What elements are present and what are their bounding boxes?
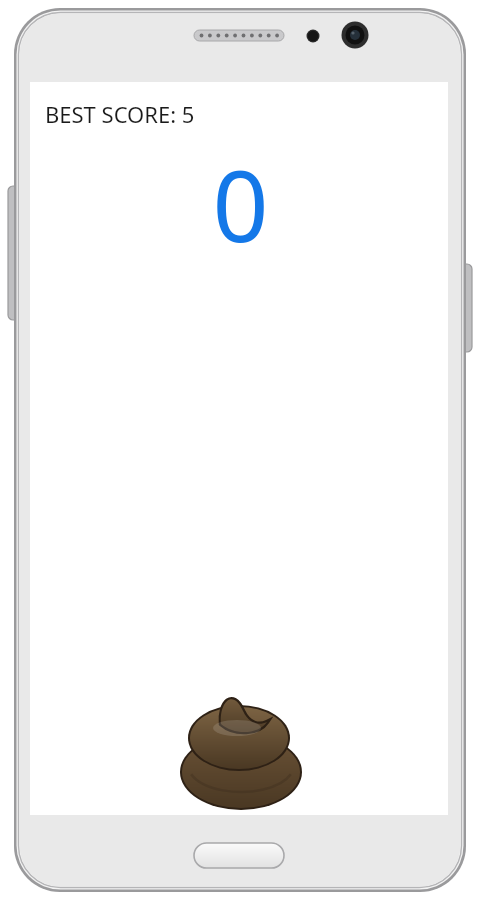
button[interactable]: Poop jump game screen	[0, 0, 478, 900]
